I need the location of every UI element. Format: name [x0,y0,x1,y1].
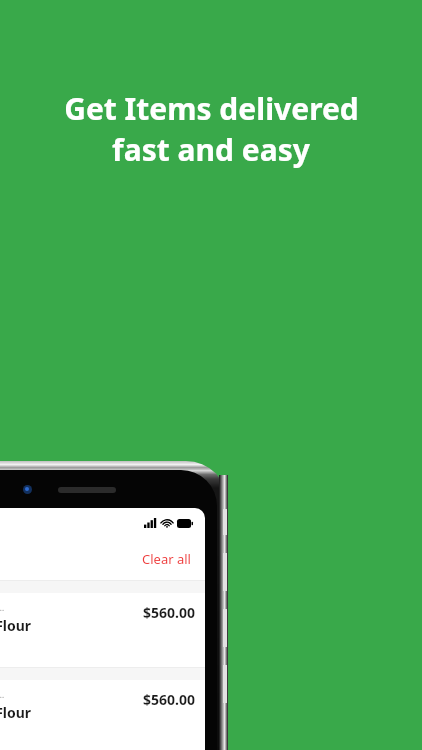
staticText: na Productos ... [0,689,5,700]
staticText: $560.00 [143,603,195,622]
staticText: arinas/Flour [0,703,32,722]
staticText: Get Items delivered [64,88,359,129]
staticText: fast and easy [112,129,310,170]
staticText: arinas/Flour [0,616,32,635]
staticText: na Productos ... [0,602,5,613]
button[interactable]: Clear all [128,544,205,574]
button[interactable]: na Productos ... [0,593,205,667]
staticText: Clear all [142,550,191,568]
button[interactable]: na Productos ... [0,680,205,750]
staticText: $560.00 [143,690,195,709]
